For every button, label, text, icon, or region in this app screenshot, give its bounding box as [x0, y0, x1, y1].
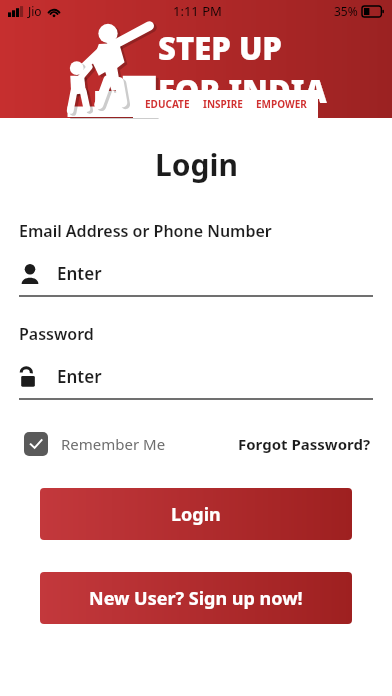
staticText: Login — [171, 502, 221, 527]
staticText: New User? Sign up now! — [89, 586, 303, 611]
button[interactable]: Remember Me — [19, 432, 170, 456]
button[interactable]: New User? Sign up now! — [40, 572, 352, 624]
staticText: Password — [19, 323, 94, 345]
staticText: Email Address or Phone Number — [19, 220, 272, 242]
staticText: 1:11 PM — [173, 2, 222, 20]
staticText: FOR INDIA — [158, 70, 327, 112]
button[interactable]: Forgot Password? — [236, 430, 373, 458]
other: Email or phone — [19, 263, 41, 285]
staticText: Enter — [57, 262, 102, 285]
other: Password — [19, 366, 41, 388]
staticText: Jio — [28, 3, 42, 19]
staticText: Forgot Password? — [238, 434, 371, 454]
staticText: EMPOWER — [256, 97, 307, 111]
staticText: Login — [155, 144, 238, 185]
staticText: EDUCATE — [145, 97, 190, 111]
staticText: 35% — [334, 3, 358, 19]
button[interactable]: Login — [40, 488, 352, 540]
staticText: STEP UP — [158, 27, 282, 69]
staticText: INSPIRE — [203, 97, 243, 111]
staticText: Remember Me — [61, 434, 166, 454]
staticText: Enter — [57, 365, 102, 388]
